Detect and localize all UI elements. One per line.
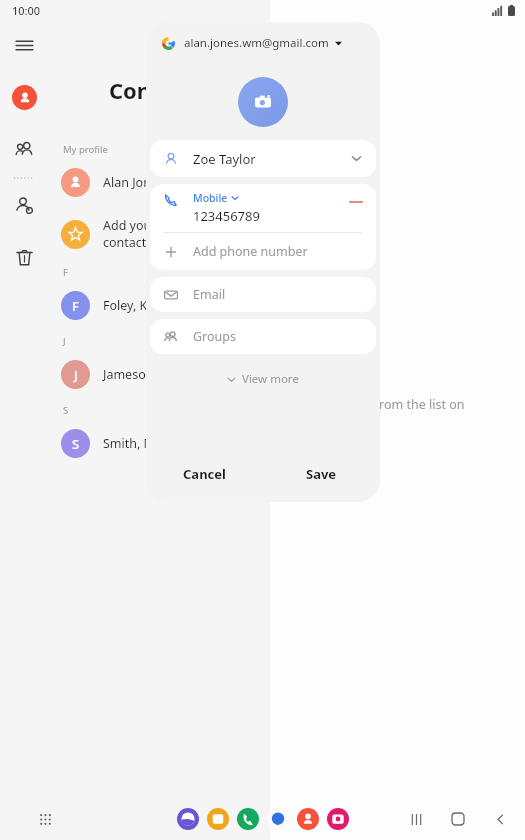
button[interactable]: Add your contacts <box>47 212 270 256</box>
button[interactable]: Add phone number <box>150 233 376 270</box>
staticText: F <box>63 266 68 279</box>
button[interactable]: Contacts <box>297 808 319 830</box>
button[interactable]: Apps <box>32 806 58 832</box>
button[interactable]: J <box>47 352 270 396</box>
staticText: Jameson, Amy <box>103 366 187 383</box>
button[interactable]: Email <box>150 277 376 312</box>
staticText: Alan Jones <box>103 174 164 191</box>
button[interactable]: Groups <box>4 129 44 169</box>
button[interactable]: Trash <box>4 237 44 277</box>
button[interactable]: Add photo <box>238 77 288 127</box>
button[interactable]: alan.jones.wm@gmail.com <box>146 22 380 64</box>
staticText: My profile <box>63 143 108 156</box>
button[interactable]: Remove phone <box>346 192 366 212</box>
button[interactable]: View more <box>146 366 380 392</box>
staticText: J <box>63 335 66 348</box>
staticText: Smith, Maria <box>103 435 178 452</box>
button[interactable]: Internet <box>177 808 199 830</box>
button[interactable]: Save <box>263 446 380 502</box>
staticText: J <box>74 366 78 384</box>
button[interactable]: S <box>47 421 270 465</box>
button[interactable]: F <box>47 283 270 327</box>
staticText: S <box>63 404 69 417</box>
button[interactable]: Mobile <box>150 184 376 232</box>
button[interactable]: Cancel <box>146 446 263 502</box>
button[interactable]: Zoe Taylor <box>150 140 376 177</box>
staticText: Select a contact from the list on <box>280 396 465 413</box>
staticText: 123456789 <box>193 207 260 225</box>
staticText: S <box>72 435 80 453</box>
button[interactable]: Menu <box>4 25 44 65</box>
button[interactable]: Home <box>447 808 469 830</box>
button[interactable]: Phone <box>237 808 259 830</box>
staticText: Groups <box>193 328 236 345</box>
staticText: Mobile <box>193 191 228 205</box>
button[interactable]: Groups <box>150 319 376 354</box>
button[interactable]: Messages <box>267 808 289 830</box>
staticText: Email <box>193 286 226 303</box>
button[interactable]: My Files <box>207 808 229 830</box>
staticText: View more <box>242 371 299 387</box>
staticText: Add phone number <box>193 243 308 260</box>
staticText: F <box>72 297 79 315</box>
button[interactable]: Contacts <box>4 77 44 117</box>
button[interactable]: Recents <box>405 808 427 830</box>
staticText: Foley, Kevin <box>103 297 172 314</box>
button[interactable]: Alan Jones <box>47 160 270 204</box>
button[interactable]: Camera <box>327 808 349 830</box>
staticText: 10:00 <box>12 3 41 18</box>
button[interactable]: Manage contacts <box>4 185 44 225</box>
staticText: Zoe Taylor <box>193 150 351 168</box>
staticText: Cancel <box>183 465 226 483</box>
staticText: Save <box>306 465 337 483</box>
staticText: Add your contacts <box>103 217 157 251</box>
staticText: alan.jones.wm@gmail.com <box>184 35 329 51</box>
button[interactable]: Back <box>489 808 511 830</box>
staticText: Contacts <box>109 75 206 105</box>
